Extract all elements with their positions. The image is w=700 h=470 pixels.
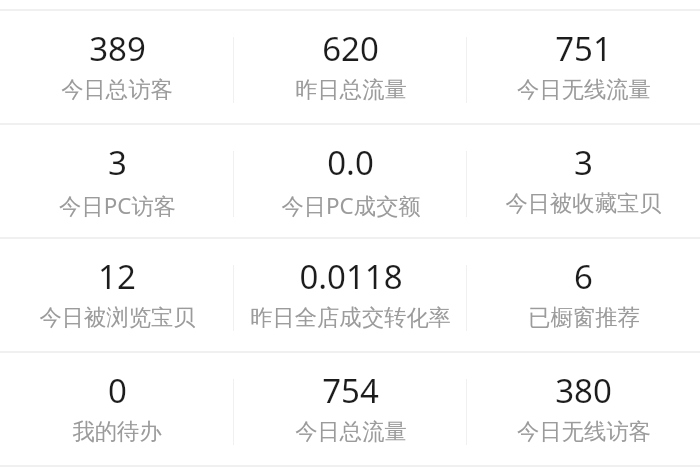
staticText: 今日总访客 xyxy=(61,76,173,104)
staticText: 0 xyxy=(108,368,127,413)
staticText: 昨日总流量 xyxy=(295,76,407,104)
button[interactable]: 昨日总流量 620 xyxy=(234,11,467,123)
staticText: 今日被收藏宝贝 xyxy=(505,190,662,218)
button[interactable]: 今日总流量 754 xyxy=(234,353,467,465)
button[interactable]: 今日被收藏宝贝 3 xyxy=(467,125,700,237)
staticText: 今日无线访客 xyxy=(517,418,651,446)
staticText: 今日PC成交额 xyxy=(281,190,421,220)
button[interactable]: 今日无线流量 751 xyxy=(467,11,700,123)
staticText: 12 xyxy=(98,254,136,299)
staticText: 754 xyxy=(322,368,379,413)
button[interactable]: 我的待办 0 xyxy=(0,353,234,465)
staticText: 已橱窗推荐 xyxy=(528,304,640,332)
staticText: 0.0 xyxy=(327,140,374,185)
staticText: 昨日全店成交转化率 xyxy=(250,304,451,332)
staticText: 3 xyxy=(108,140,127,185)
staticText: 389 xyxy=(89,26,146,71)
button[interactable]: 今日PC成交额 0.0 xyxy=(234,125,467,237)
button[interactable]: 昨日全店成交转化率 0.0118 xyxy=(234,239,467,351)
staticText: 今日总流量 xyxy=(295,418,407,446)
button[interactable]: 今日PC访客 3 xyxy=(0,125,234,237)
staticText: 6 xyxy=(574,254,593,299)
staticText: 620 xyxy=(322,26,379,71)
button[interactable]: 已橱窗推荐 6 xyxy=(467,239,700,351)
staticText: 751 xyxy=(555,26,612,71)
staticText: 今日被浏览宝贝 xyxy=(39,304,196,332)
button[interactable]: 今日总访客 389 xyxy=(0,11,234,123)
staticText: 今日PC访客 xyxy=(59,190,176,220)
button[interactable]: 今日被浏览宝贝 12 xyxy=(0,239,234,351)
staticText: 0.0118 xyxy=(299,254,403,299)
staticText: 今日无线流量 xyxy=(517,76,651,104)
staticText: 我的待办 xyxy=(72,418,162,446)
staticText: 380 xyxy=(555,368,612,413)
button[interactable]: 今日无线访客 380 xyxy=(467,353,700,465)
staticText: 3 xyxy=(574,140,593,185)
